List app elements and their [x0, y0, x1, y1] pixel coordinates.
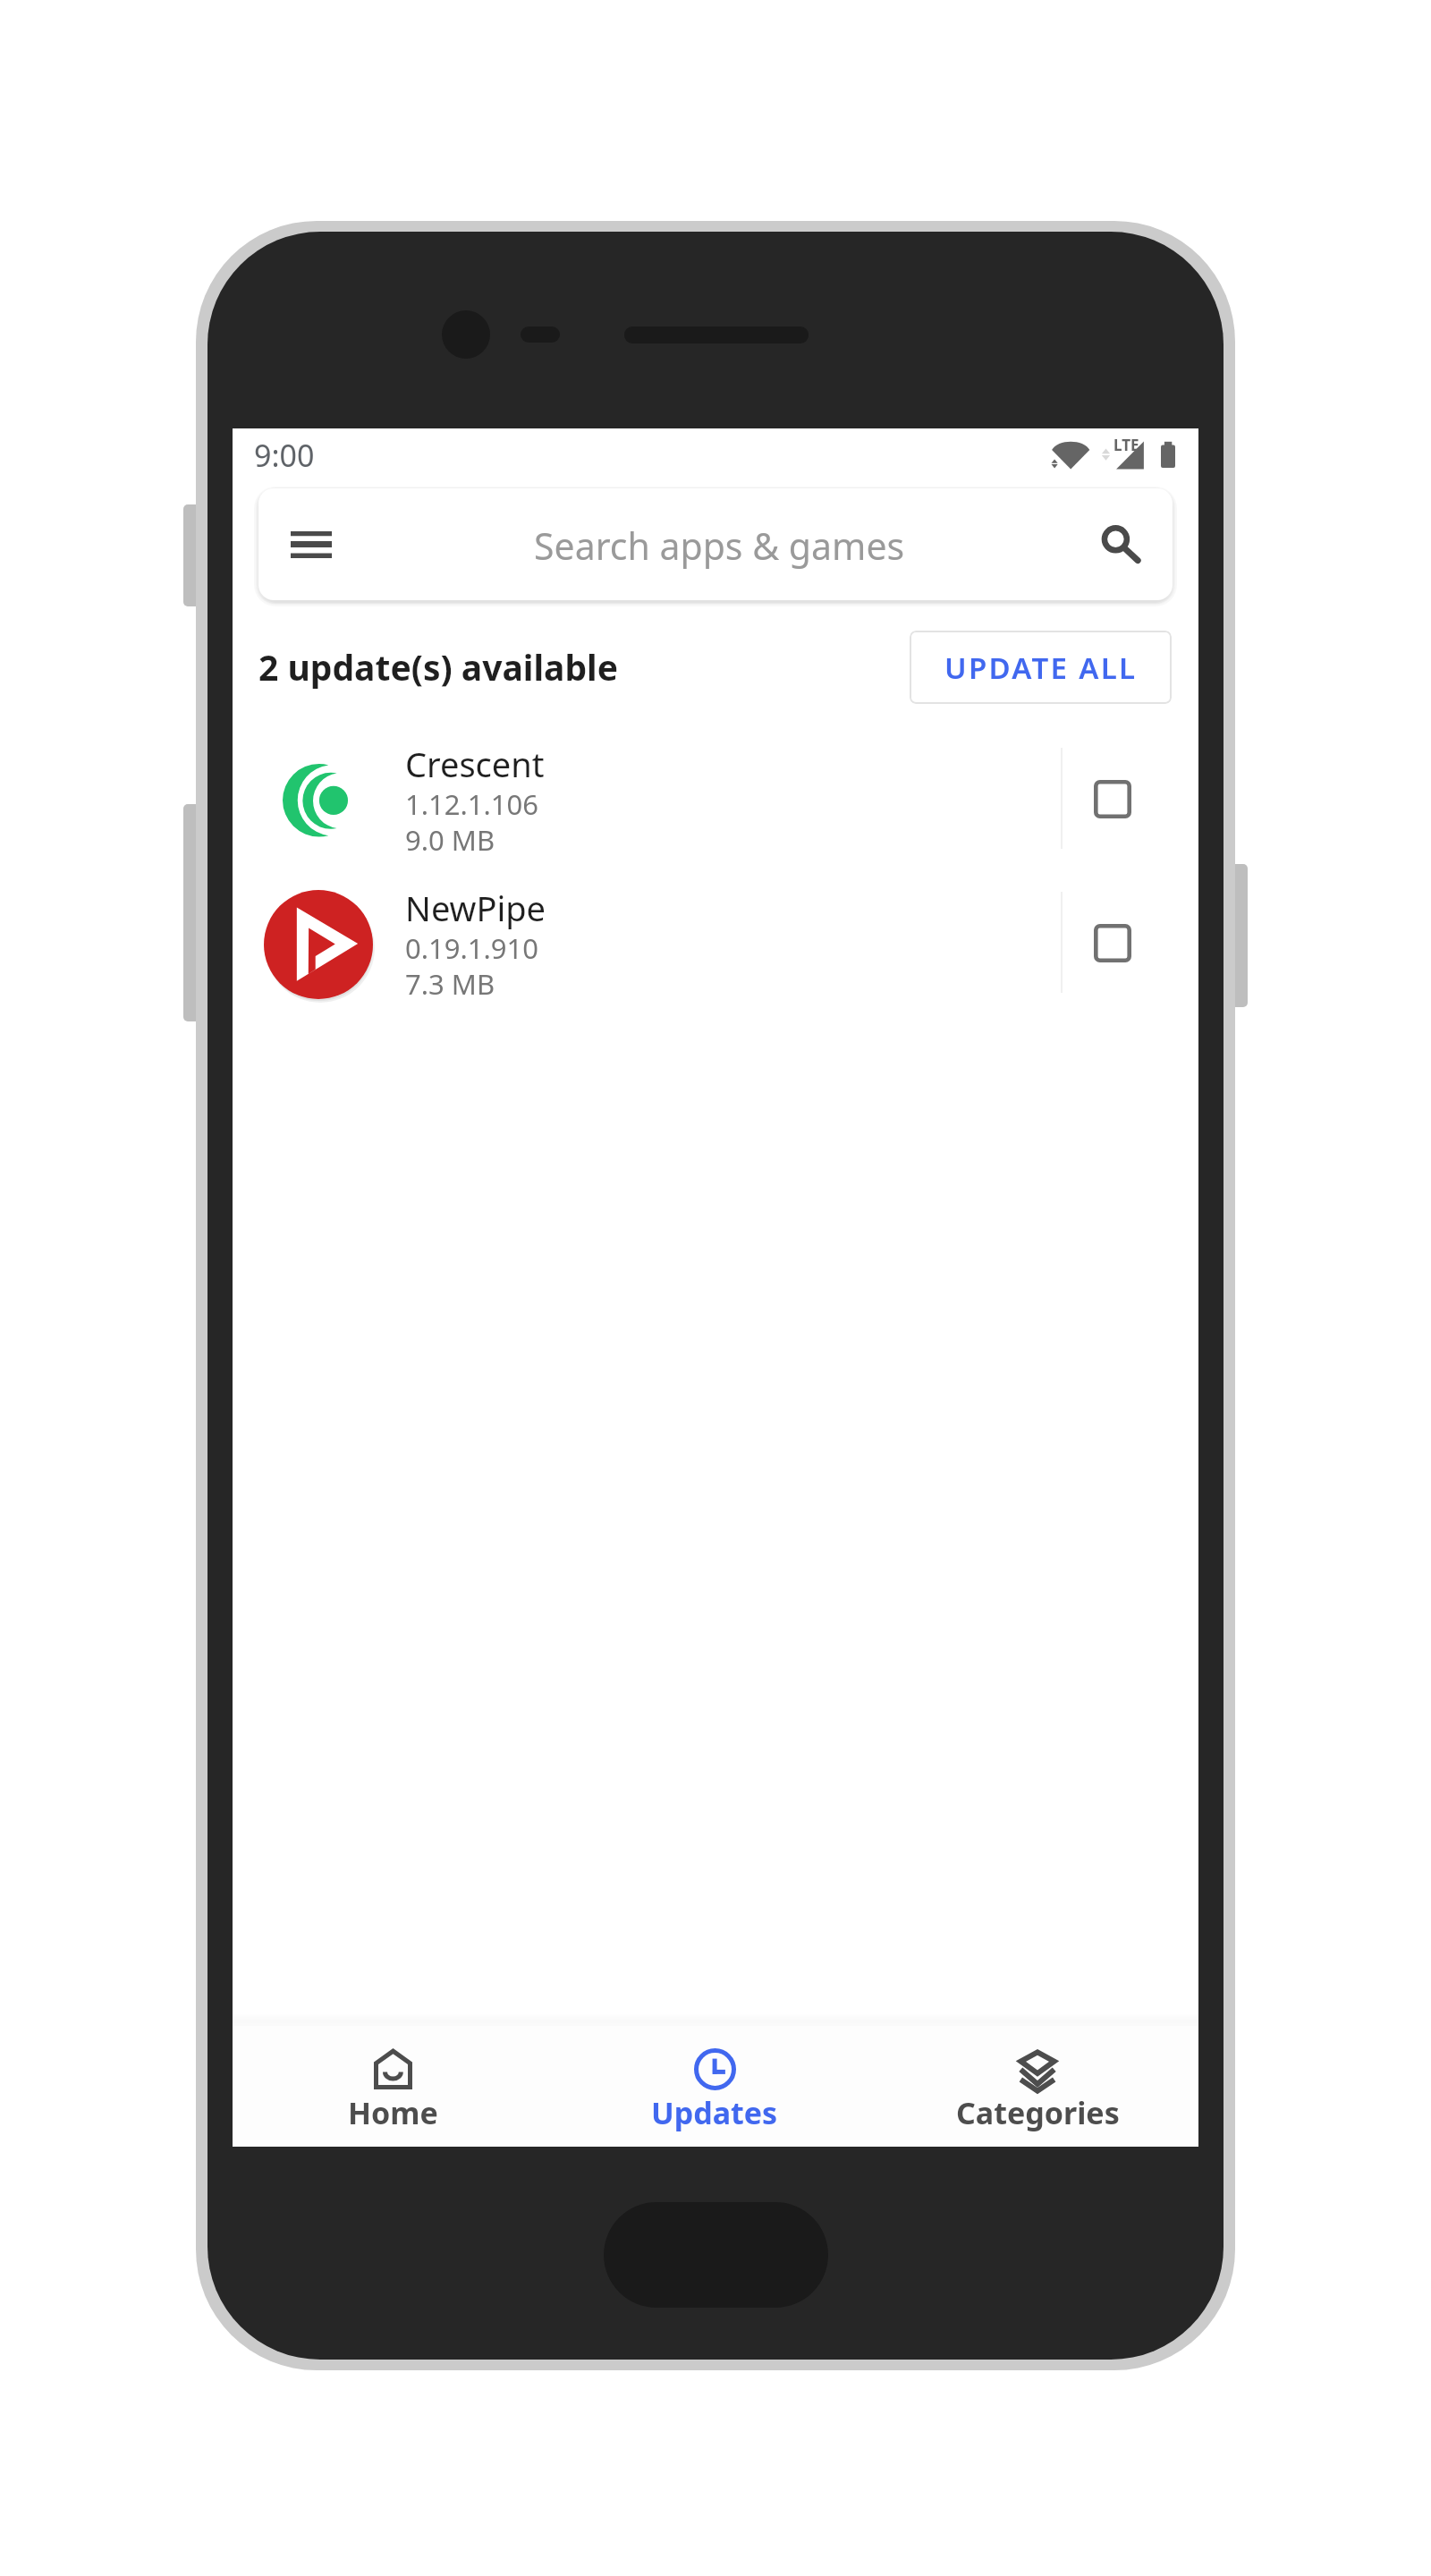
button[interactable]: Categories: [876, 2026, 1198, 2147]
staticText: Updates: [651, 2092, 778, 2133]
staticText: UPDATE ALL: [944, 648, 1138, 688]
button[interactable]: Open navigation menu: [258, 488, 1173, 600]
staticText: 1.12.1.106: [405, 785, 539, 823]
staticText: LTE: [1113, 435, 1139, 455]
staticText: Crescent: [405, 741, 545, 787]
other: Open navigation menu: [291, 531, 332, 560]
staticText: 7.3 MB: [405, 965, 495, 1003]
other: Home button: [604, 2202, 828, 2308]
button[interactable]: Crescent: [233, 733, 1198, 876]
button[interactable]: Updates: [555, 2026, 876, 2147]
staticText: Home: [348, 2092, 438, 2133]
staticText: Categories: [956, 2092, 1120, 2133]
button[interactable]: UPDATE ALL: [910, 631, 1172, 704]
staticText: Search apps & games: [534, 521, 905, 571]
button[interactable]: Home: [233, 2026, 555, 2147]
button[interactable]: NewPipe: [233, 877, 1198, 1020]
staticText: 9.0 MB: [405, 821, 495, 859]
button[interactable]: Select NewPipe: [1067, 897, 1176, 990]
other: Search: [1100, 523, 1145, 568]
button[interactable]: Select Crescent: [1067, 753, 1176, 846]
staticText: 9:00: [254, 435, 315, 476]
staticText: 0.19.1.910: [405, 929, 539, 967]
staticText: NewPipe: [405, 885, 546, 931]
staticText: 2 update(s) available: [258, 643, 619, 691]
